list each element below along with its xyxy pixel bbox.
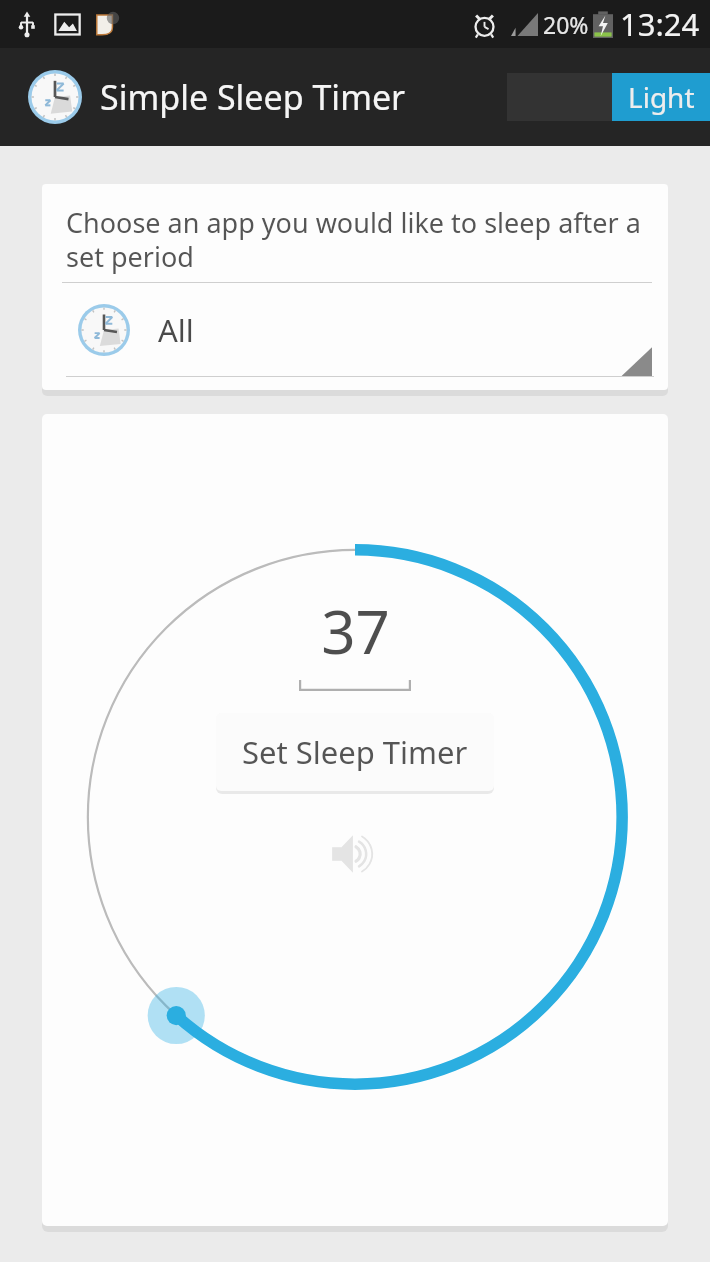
staticText: Set Sleep Timer xyxy=(242,731,468,773)
staticText: 37 xyxy=(321,590,390,672)
button[interactable]: Light xyxy=(612,73,710,121)
staticText: 20% xyxy=(543,9,589,40)
button[interactable]: Simple Sleep Timer xyxy=(28,70,406,124)
button[interactable]: Set Sleep Timer xyxy=(216,713,494,791)
button[interactable]: All xyxy=(42,283,668,390)
staticText: Simple Sleep Timer xyxy=(100,74,406,120)
staticText: Set Sleep Timer xyxy=(242,734,468,776)
button[interactable]: Volume xyxy=(322,821,388,887)
staticText: Light xyxy=(628,78,695,116)
staticText: 13:24 xyxy=(620,3,700,45)
staticText: All xyxy=(158,309,194,351)
staticText: Choose an app you would like to sleep af… xyxy=(66,204,648,275)
